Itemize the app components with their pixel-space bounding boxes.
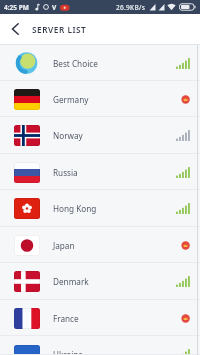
button[interactable]: Germany (0, 81, 200, 117)
staticText: Best Choice (53, 58, 98, 69)
staticText: 26.9KB/s (116, 3, 146, 12)
button[interactable] (0, 14, 30, 44)
staticText: Russia (53, 167, 78, 178)
staticText: Ukraine (53, 349, 83, 355)
staticText: Norway (53, 130, 83, 141)
staticText: 4:25 PM (4, 3, 29, 12)
button[interactable]: Norway (0, 117, 200, 154)
staticText: Germany (53, 94, 89, 105)
button[interactable]: Japan (0, 227, 200, 263)
button[interactable]: Best Choice (0, 45, 200, 81)
button[interactable]: Denmark (0, 263, 200, 300)
staticText: Hong Kong (53, 203, 97, 214)
button[interactable]: Hong Kong (0, 190, 200, 227)
staticText: V (52, 3, 57, 12)
button[interactable]: France (0, 300, 200, 336)
staticText: France (53, 313, 79, 324)
staticText: SERVER LIST (32, 24, 87, 35)
staticText: Denmark (53, 276, 89, 287)
staticText: Japan (53, 240, 75, 251)
button[interactable]: Russia (0, 154, 200, 190)
button[interactable]: Ukraine (0, 336, 200, 355)
